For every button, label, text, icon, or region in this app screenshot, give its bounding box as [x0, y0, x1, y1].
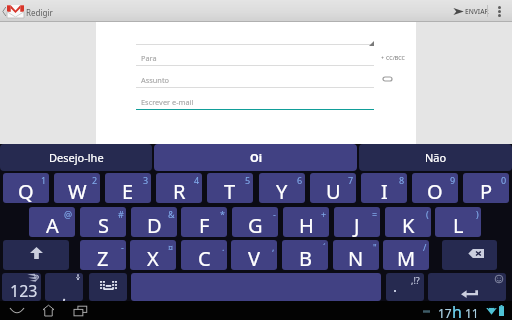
button[interactable]: X [130, 240, 176, 270]
button[interactable]: T [207, 173, 253, 203]
button[interactable]: L [435, 207, 481, 237]
staticText: Redigir [26, 7, 53, 18]
staticText: 0 [501, 174, 507, 186]
staticText: # [118, 208, 124, 220]
staticText: & [168, 208, 175, 220]
staticText: Desejo-lhe [49, 150, 104, 165]
staticText: ¤ [168, 241, 174, 253]
button[interactable]: I [361, 173, 407, 203]
button[interactable]: + [381, 50, 417, 64]
button[interactable]: Y [259, 173, 305, 203]
button[interactable]: shift [3, 240, 69, 270]
button[interactable]: comma [45, 273, 83, 301]
staticText: O [427, 178, 443, 203]
staticText: Escrever e-mail [141, 97, 194, 107]
staticText: / [423, 241, 427, 253]
button[interactable]: Oi [154, 144, 357, 171]
button[interactable]: V [231, 240, 277, 270]
staticText: E [122, 178, 134, 203]
staticText: B [299, 245, 312, 270]
staticText: V [248, 245, 260, 270]
staticText: Não [425, 150, 447, 165]
button[interactable]: U [310, 173, 356, 203]
button[interactable]: G [232, 207, 278, 237]
staticText: 7 [348, 174, 354, 186]
staticText: 1 [41, 174, 47, 186]
staticText: Assunto [141, 75, 170, 85]
staticText: S [98, 212, 109, 237]
staticText: 8 [399, 174, 405, 186]
button[interactable]: D [131, 207, 177, 237]
button[interactable]: enter [428, 273, 506, 301]
button[interactable]: J [334, 207, 380, 237]
button[interactable]: F [181, 207, 227, 237]
staticText: 123 [10, 280, 38, 301]
button[interactable]: E [105, 173, 151, 203]
button[interactable]: Anexar [377, 70, 397, 88]
staticText: G [248, 212, 263, 237]
staticText: Y [276, 178, 288, 203]
button[interactable]: O [412, 173, 458, 203]
staticText: H [299, 212, 314, 237]
staticText: U [326, 178, 341, 203]
staticText: ENVIAR [465, 7, 489, 16]
staticText: T [224, 178, 236, 203]
staticText: ( [426, 208, 429, 220]
button[interactable]: ENVIAR [449, 0, 493, 22]
button[interactable]: Mais opções [490, 0, 509, 22]
staticText: W [68, 178, 87, 203]
staticText: ) [476, 208, 479, 220]
button[interactable]: B [282, 240, 328, 270]
staticText: 3 [143, 174, 149, 186]
button[interactable]: Z [80, 240, 126, 270]
button[interactable]: Voltar [2, 301, 32, 320]
staticText: 17 [438, 305, 452, 320]
button[interactable]: R [156, 173, 202, 203]
staticText: D [147, 212, 162, 237]
staticText: Q [18, 178, 34, 203]
button[interactable]: M [383, 240, 429, 270]
staticText: Para [141, 53, 157, 63]
staticText: " [373, 241, 377, 253]
staticText: F [199, 212, 210, 237]
button[interactable]: P [463, 173, 509, 203]
button[interactable]: lang [89, 273, 127, 301]
staticText: A [46, 212, 59, 237]
staticText: + [321, 208, 327, 220]
staticText: h [452, 301, 462, 320]
staticText: J [354, 212, 360, 237]
button[interactable]: bksp [442, 240, 497, 270]
button[interactable]: Desejo-lhe [0, 144, 152, 171]
button[interactable]: W [54, 173, 100, 203]
staticText: P [480, 178, 493, 203]
button[interactable]: Recentes [65, 301, 95, 320]
button[interactable]: punct [386, 273, 424, 301]
button[interactable]: N [333, 240, 379, 270]
staticText: * [220, 208, 225, 220]
staticText: @ [64, 208, 73, 220]
button[interactable]: Q [3, 173, 49, 203]
staticText: , [62, 284, 67, 301]
button[interactable]: sym [2, 273, 41, 301]
staticText: CC/BCC [386, 54, 405, 61]
button[interactable]: Não [359, 144, 512, 171]
staticText: - [273, 208, 276, 220]
staticText: Oi [250, 150, 262, 165]
staticText: + [381, 54, 385, 61]
button[interactable]: A [29, 207, 75, 237]
staticText: = [372, 208, 378, 220]
button[interactable]: S [80, 207, 126, 237]
button[interactable]: K [385, 207, 431, 237]
staticText: R [173, 178, 186, 203]
button[interactable]: Voltar [0, 0, 24, 22]
button[interactable]: H [283, 207, 329, 237]
staticText: N [348, 245, 364, 270]
staticText: Z [97, 245, 109, 270]
staticText: , [272, 241, 275, 253]
button[interactable]: Início [33, 301, 63, 320]
staticText: L [453, 212, 464, 237]
button[interactable]: C [181, 240, 227, 270]
staticText: 9 [450, 174, 456, 186]
staticText: 6 [297, 174, 303, 186]
